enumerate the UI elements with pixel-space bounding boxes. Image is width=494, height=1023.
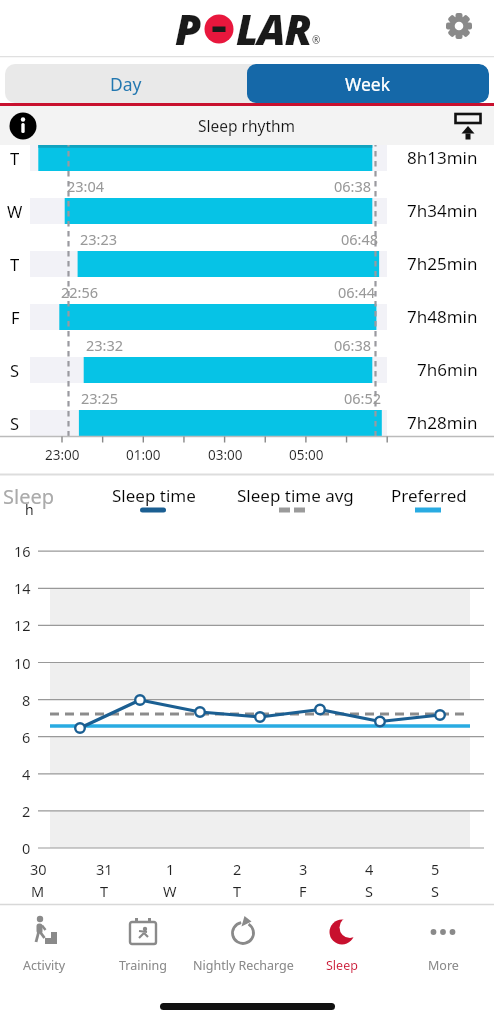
staticText: 2 [22, 801, 31, 821]
button[interactable]: More [383, 906, 494, 976]
staticText: ® [312, 33, 321, 47]
staticText: 10 [14, 653, 31, 673]
staticText: 7h48min [407, 305, 478, 328]
staticText: LAR [236, 0, 311, 56]
button[interactable] [6, 109, 39, 142]
staticText: Preferred [391, 484, 467, 507]
staticText: 7h25min [407, 252, 478, 275]
staticText: 22:56 [61, 282, 99, 302]
staticText: F [11, 306, 20, 328]
staticText: F [299, 881, 307, 901]
staticText: 06:44 [338, 282, 376, 302]
staticText: T [100, 881, 109, 901]
staticText: Sleep [326, 957, 358, 974]
staticText: T [233, 881, 242, 901]
staticText: 5 [431, 859, 440, 879]
staticText: h [25, 500, 34, 519]
button[interactable]: Day [5, 64, 247, 103]
staticText: 1 [166, 859, 175, 879]
staticText: 8 [22, 690, 31, 710]
staticText: 31 [96, 859, 113, 879]
staticText: 7h34min [407, 199, 478, 222]
staticText: S [431, 881, 439, 901]
staticText: Training [119, 957, 167, 974]
staticText: 06:38 [334, 335, 372, 355]
staticText: 06:48 [341, 229, 379, 249]
button[interactable]: Nightly Recharge [183, 906, 303, 976]
staticText: Sleep rhythm [198, 115, 296, 136]
staticText: 4 [22, 764, 31, 784]
staticText: S [365, 881, 373, 901]
staticText: 23:25 [81, 388, 119, 408]
staticText: 03:00 [208, 446, 243, 464]
staticText: 16 [14, 541, 31, 561]
staticText: 7h28min [407, 411, 478, 434]
staticText: 0 [22, 838, 31, 858]
staticText: Day [110, 72, 142, 96]
staticText: 23:04 [67, 176, 105, 196]
staticText: More [428, 957, 459, 974]
staticText: S [10, 412, 20, 434]
staticText: 23:00 [45, 446, 80, 464]
staticText: P [175, 0, 202, 56]
staticText: Nightly Recharge [193, 957, 294, 974]
staticText: W [7, 200, 23, 222]
staticText: Activity [23, 957, 66, 974]
staticText: 23:23 [80, 229, 118, 249]
button[interactable]: Sleep [282, 906, 402, 976]
staticText: 05:00 [289, 446, 324, 464]
staticText: 06:38 [334, 176, 372, 196]
staticText: 14 [14, 578, 31, 598]
staticText: 2 [233, 859, 242, 879]
staticText: 6 [22, 727, 31, 747]
staticText: 01:00 [126, 446, 161, 464]
staticText: T [10, 253, 20, 275]
staticText: 3 [299, 859, 308, 879]
staticText: 7h6min [417, 358, 478, 381]
staticText: 8h13min [407, 146, 478, 169]
staticText: 23:32 [86, 335, 124, 355]
staticText: 06:52 [344, 388, 382, 408]
staticText: S [10, 359, 20, 381]
staticText: 12 [14, 615, 31, 635]
staticText: Sleep time [112, 484, 196, 507]
staticText: W [163, 881, 177, 901]
button[interactable] [440, 7, 478, 45]
button[interactable]: Activity [0, 906, 104, 976]
button[interactable] [449, 108, 487, 144]
staticText: Sleep time avg [237, 484, 354, 507]
staticText: Sleep [3, 483, 54, 510]
button[interactable]: Week [247, 64, 489, 103]
staticText: T [10, 147, 20, 169]
staticText: Week [345, 72, 391, 96]
button[interactable]: Training [83, 906, 203, 976]
staticText: M [31, 881, 45, 901]
staticText: 30 [30, 859, 47, 879]
staticText: 4 [365, 859, 374, 879]
